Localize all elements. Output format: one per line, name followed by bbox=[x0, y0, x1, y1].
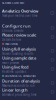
button[interactable]: Info bbox=[51, 11, 54, 14]
button[interactable]: Configure run bbox=[0, 23, 56, 32]
button[interactable]: Using sample data bbox=[0, 55, 56, 64]
button[interactable]: Using live feed bbox=[0, 64, 56, 73]
staticText: Details below bbox=[2, 38, 21, 41]
staticText: Configure run bbox=[2, 23, 31, 29]
staticText: Realtime updates bbox=[2, 70, 26, 73]
staticText: Choose a mode bbox=[2, 29, 24, 32]
staticText: Maximum seconds to run bbox=[2, 84, 35, 87]
staticText: Using sample data bbox=[2, 55, 36, 61]
staticText: Using live feed bbox=[2, 64, 28, 70]
staticText: Track your metrics over time bbox=[2, 14, 38, 17]
staticText: SCREEN CONTENT bbox=[2, 1, 25, 5]
button[interactable]: Duration of analysis bbox=[0, 78, 56, 87]
staticText: FEATURED bbox=[5, 42, 18, 46]
staticText: Duration of analysis bbox=[2, 78, 40, 84]
staticText: Linear length bbox=[2, 87, 28, 93]
button[interactable]: Please review scale bbox=[0, 32, 56, 41]
staticText: Slower loading results bbox=[2, 52, 33, 55]
staticText: Using full analysis bbox=[2, 46, 36, 52]
staticText: Estimated processing time bbox=[2, 93, 37, 96]
staticText: Please review scale bbox=[2, 32, 36, 38]
staticText: Faster preview bbox=[2, 61, 19, 64]
staticText: AUTOMATIC ANALYSIS bbox=[5, 74, 35, 78]
button[interactable]: Linear length bbox=[0, 87, 56, 96]
staticText: Analytics Overview bbox=[2, 8, 38, 13]
button[interactable]: Using full analysis bbox=[0, 46, 56, 55]
